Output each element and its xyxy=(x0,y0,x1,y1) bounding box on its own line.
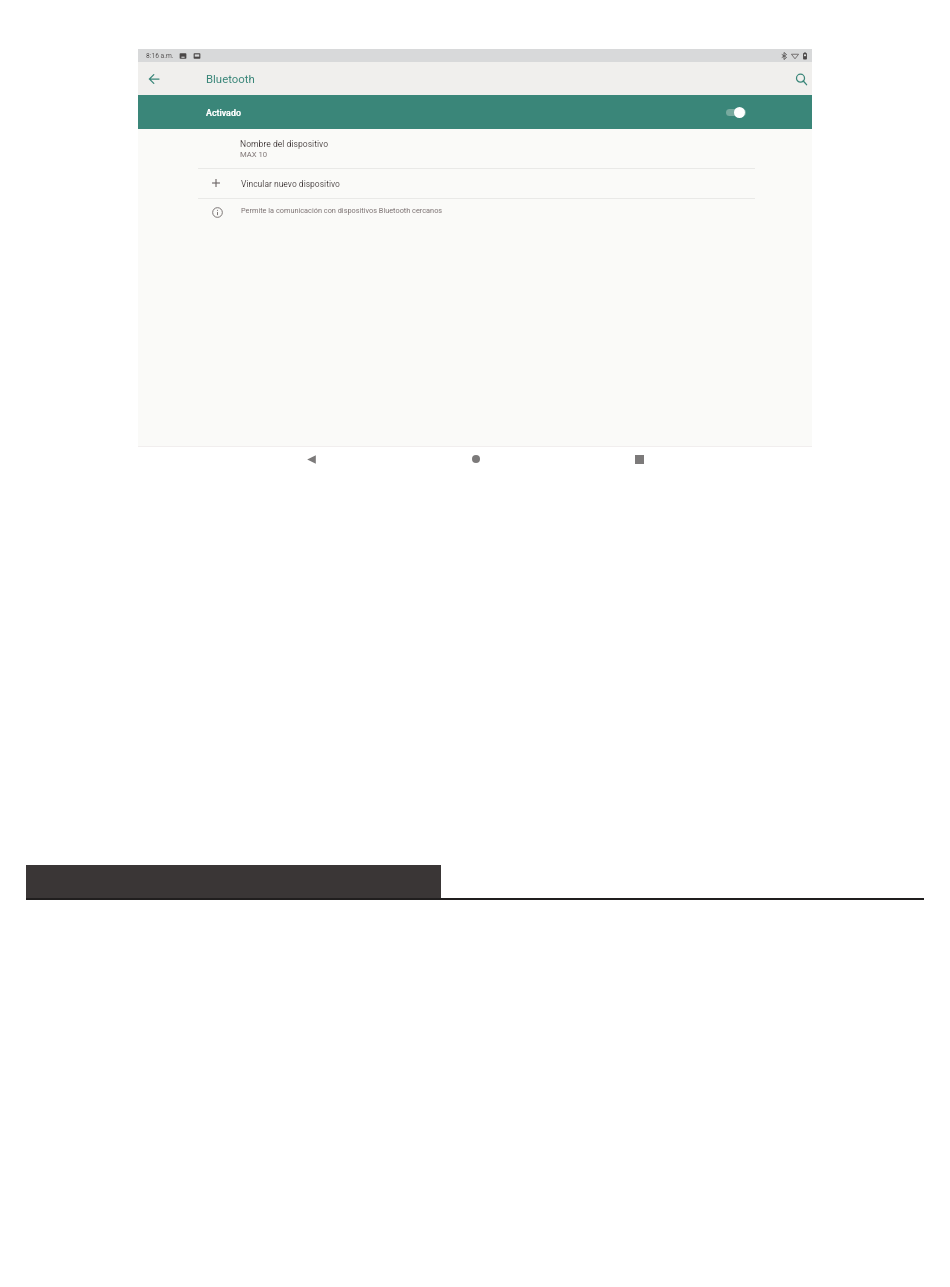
staticText: Permite la comunicación con dispositivos… xyxy=(241,206,443,215)
staticText: Nombre del dispositivo xyxy=(240,139,329,149)
button[interactable]: Back xyxy=(141,66,167,92)
button[interactable]: Recent apps xyxy=(628,448,650,470)
button[interactable]: Search xyxy=(786,66,812,92)
staticText: Vincular nuevo dispositivo xyxy=(241,179,340,189)
staticText: 8:16 a.m. xyxy=(146,52,174,60)
button[interactable]: Nombre del dispositivo xyxy=(138,129,812,168)
button[interactable]: Home xyxy=(465,448,487,470)
button[interactable]: Back xyxy=(300,448,322,470)
staticText: Activado xyxy=(206,108,241,118)
button[interactable]: Activado xyxy=(138,95,812,129)
staticText: MAX 10 xyxy=(240,150,268,159)
staticText: Bluetooth xyxy=(206,72,255,85)
button[interactable]: Vincular nuevo dispositivo xyxy=(138,169,812,198)
